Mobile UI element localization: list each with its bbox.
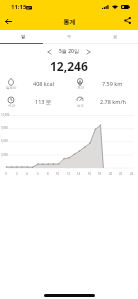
staticText: 16 xyxy=(88,172,92,176)
staticText: 속도 xyxy=(77,104,84,108)
button[interactable]: Previous day xyxy=(45,47,54,56)
button[interactable]: 일 xyxy=(0,30,46,43)
staticText: 24 xyxy=(130,172,134,176)
staticText: 14 xyxy=(77,172,81,176)
staticText: 2 xyxy=(16,172,18,176)
staticText: 3,000 xyxy=(1,153,8,157)
staticText: 408 kcal xyxy=(33,80,54,87)
staticText: 12,000 xyxy=(1,113,10,117)
staticText: 칼로리 xyxy=(6,86,17,90)
button[interactable]: Share xyxy=(121,14,134,27)
button[interactable]: 시간 xyxy=(0,94,69,109)
staticText: 주 xyxy=(67,34,72,39)
button[interactable]: 거리 xyxy=(69,76,138,91)
staticText: 7.59 km xyxy=(102,80,123,87)
staticText: 10 xyxy=(56,172,60,176)
button[interactable]: Back xyxy=(2,15,15,28)
staticText: 9,000 xyxy=(1,126,8,130)
staticText: 5월 20일 xyxy=(59,48,79,55)
staticText: 2.78 km/h xyxy=(100,98,126,105)
staticText: 20 xyxy=(109,172,113,176)
staticText: 12,246 xyxy=(50,58,88,74)
staticText: 11:15 xyxy=(11,3,27,11)
button[interactable]: Next day xyxy=(84,47,93,56)
staticText: 일 xyxy=(21,34,26,39)
staticText: 0 xyxy=(5,172,7,176)
staticText: 월 xyxy=(113,34,118,39)
staticText: 113 분 xyxy=(35,98,52,106)
staticText: 통계 xyxy=(63,18,76,26)
staticText: 8 xyxy=(47,172,49,176)
staticText: 12 xyxy=(67,172,71,176)
button[interactable]: 주 xyxy=(46,30,92,43)
staticText: 18 xyxy=(98,172,102,176)
staticText: 시간 xyxy=(8,104,15,108)
staticText: 4 xyxy=(26,172,28,176)
button[interactable]: 칼로리 xyxy=(0,76,69,91)
button[interactable]: 속도 xyxy=(69,94,138,109)
staticText: 6,000 xyxy=(1,139,8,143)
staticText: 6 xyxy=(37,172,39,176)
staticText: 거리 xyxy=(77,86,84,90)
button[interactable]: 월 xyxy=(92,30,138,43)
staticText: 22 xyxy=(119,172,123,176)
